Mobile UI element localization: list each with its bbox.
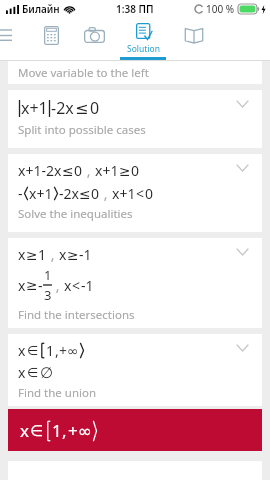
staticText: 0	[90, 97, 100, 119]
other: Expand	[237, 345, 248, 351]
staticText: x+1	[29, 184, 53, 203]
other: Expand	[237, 101, 248, 107]
staticText: 0	[145, 184, 154, 203]
staticText: -	[38, 276, 43, 295]
staticText: x+1	[21, 97, 48, 119]
staticText: <	[72, 276, 81, 295]
staticText: x	[64, 276, 72, 295]
staticText: Find the union	[18, 385, 97, 401]
staticText: Solution	[127, 43, 160, 55]
button[interactable]: Camera	[78, 19, 110, 51]
staticText: ∈	[27, 365, 39, 380]
staticText: ≤	[62, 163, 74, 179]
staticText: x+1	[112, 184, 136, 203]
staticText: 0	[91, 184, 100, 203]
button[interactable]: x+1	[8, 90, 262, 148]
staticText: x	[20, 419, 29, 442]
button[interactable]: x	[8, 409, 262, 451]
staticText: -2x	[51, 97, 74, 119]
staticText: x	[59, 245, 67, 264]
staticText: <	[136, 184, 145, 203]
button[interactable]: x	[8, 238, 262, 328]
button[interactable]: Book	[178, 19, 210, 51]
staticText: +∞	[59, 341, 79, 360]
staticText: ,	[100, 184, 112, 203]
staticText: x	[18, 363, 26, 382]
staticText: x	[18, 245, 26, 264]
staticText: 0	[74, 161, 83, 180]
staticText: +∞	[68, 419, 92, 442]
button[interactable]: x+1-2x	[8, 154, 262, 232]
button[interactable]: x	[8, 334, 262, 406]
button[interactable]: Menu	[0, 23, 16, 47]
staticText: ,	[55, 341, 59, 360]
staticText: ≥	[119, 163, 131, 179]
staticText: 100 %	[206, 2, 235, 16]
staticText: Find the intersections	[18, 307, 135, 323]
staticText: x	[18, 341, 26, 360]
other: Expand	[237, 165, 248, 171]
staticText: ,	[52, 276, 64, 295]
staticText: ∈	[27, 343, 39, 358]
other: Expand	[237, 249, 248, 255]
staticText: ,	[62, 419, 67, 442]
button[interactable]: Solution	[118, 19, 168, 59]
staticText: ,	[83, 161, 95, 180]
staticText: -	[18, 184, 23, 203]
staticText: Split into possible cases	[18, 122, 146, 138]
button[interactable]: Move variable to the left	[8, 61, 262, 84]
staticText: 1	[46, 341, 55, 360]
staticText: 0	[131, 161, 140, 180]
staticText: 3	[44, 286, 52, 304]
button[interactable]: Calculator	[36, 20, 66, 50]
staticText: ≤	[75, 99, 89, 118]
staticText: 1	[52, 419, 62, 442]
staticText: ≤	[79, 186, 91, 202]
staticText: -2x	[59, 184, 79, 203]
staticText: 1:38 ПП	[116, 2, 154, 16]
staticText: Move variable to the left	[18, 65, 149, 81]
staticText: Solve the inequalities	[18, 206, 133, 222]
staticText: 1	[44, 266, 52, 284]
staticText: x	[18, 276, 26, 295]
staticText: ∈	[30, 422, 44, 439]
staticText: ∅	[40, 364, 54, 381]
staticText: 1	[38, 245, 47, 264]
staticText: ≥	[26, 247, 38, 263]
staticText: Билайн	[22, 2, 60, 16]
staticText: x+1	[95, 161, 119, 180]
staticText: ≥	[67, 247, 79, 263]
staticText: x+1-2x	[18, 161, 62, 180]
staticText: ,	[47, 245, 59, 264]
staticText: ≥	[26, 277, 38, 293]
staticText: -1	[81, 276, 94, 295]
staticText: -1	[79, 245, 92, 264]
